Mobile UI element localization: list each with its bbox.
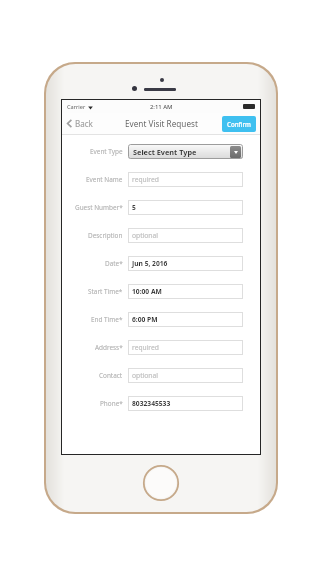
staticText: Select Event Type [133, 147, 197, 157]
button[interactable]: Jun 5, 2016 [128, 256, 243, 271]
button[interactable]: required [128, 172, 243, 187]
staticText: required [132, 343, 159, 352]
button[interactable]: optional [128, 228, 243, 243]
staticText: Address* [95, 343, 123, 352]
button[interactable]: 10:00 AM [128, 284, 243, 299]
staticText: optional [132, 231, 158, 240]
button[interactable]: required [128, 340, 243, 355]
staticText: Contact [99, 371, 123, 380]
staticText: required [132, 175, 159, 184]
staticText: Event Visit Request [125, 118, 198, 129]
staticText: 6:00 PM [132, 315, 158, 324]
staticText: Event Name [86, 175, 123, 184]
button[interactable]: Confirm [222, 116, 256, 132]
staticText: Description [88, 231, 123, 240]
staticText: 2:11 AM [150, 103, 173, 111]
staticText: Event Type [90, 147, 123, 156]
button[interactable]: 6:00 PM [128, 312, 243, 327]
staticText: Date* [105, 259, 123, 268]
button[interactable]: 8032345533 [128, 396, 243, 411]
staticText: 5 [132, 203, 136, 212]
staticText: Start Time* [88, 287, 123, 296]
staticText: Phone* [100, 399, 123, 408]
button[interactable]: Back [62, 114, 101, 133]
staticText: 8032345533 [132, 399, 171, 408]
button[interactable]: optional [128, 368, 243, 383]
staticText: End Time* [91, 315, 123, 324]
button[interactable]: Select Event Type [128, 144, 243, 159]
staticText: 10:00 AM [132, 287, 162, 296]
button[interactable]: 5 [128, 200, 243, 215]
staticText: Carrier [67, 103, 86, 111]
staticText: Confirm [227, 120, 251, 128]
staticText: Back [75, 118, 93, 129]
staticText: Guest Number* [75, 203, 123, 212]
staticText: optional [132, 371, 158, 380]
staticText: Jun 5, 2016 [132, 259, 168, 268]
